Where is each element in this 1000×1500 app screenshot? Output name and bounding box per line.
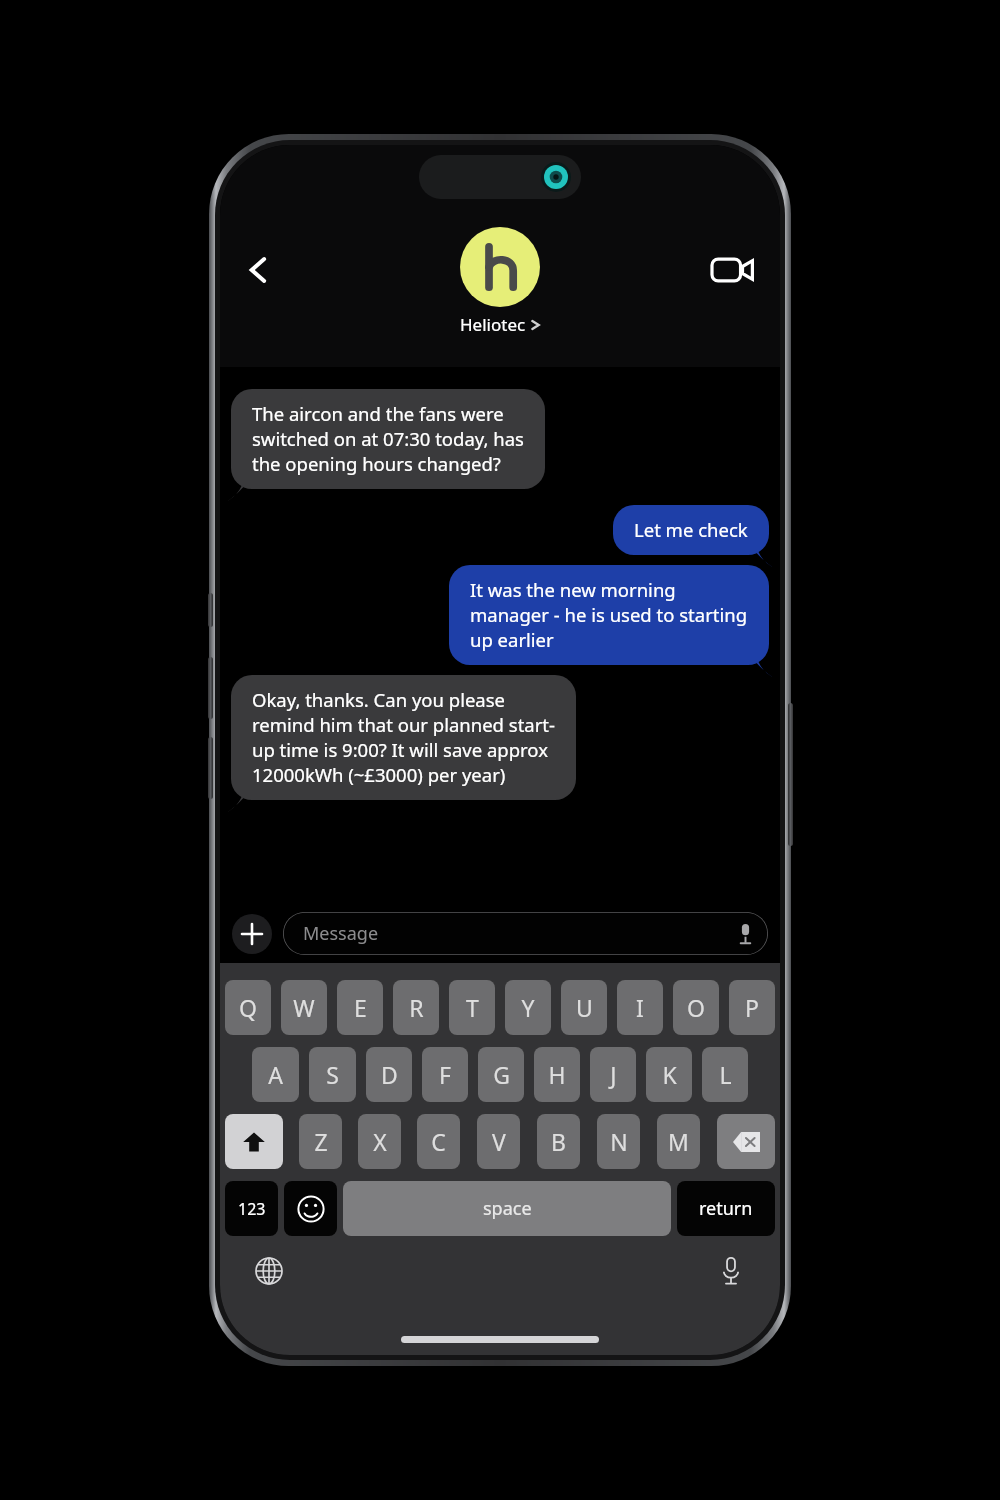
staticText: Message [303, 921, 379, 946]
button[interactable]: L [702, 1047, 748, 1102]
staticText: E [354, 992, 367, 1023]
button[interactable]: F [422, 1047, 468, 1102]
button[interactable]: P [729, 980, 775, 1035]
button[interactable]: The aircon and the fans were [231, 389, 545, 489]
button[interactable]: Q [225, 980, 271, 1035]
staticText: K [662, 1059, 677, 1090]
staticText: L [719, 1059, 732, 1090]
button[interactable]: C [417, 1114, 460, 1169]
button[interactable]: H [534, 1047, 580, 1102]
button[interactable]: A [252, 1047, 299, 1102]
button[interactable]: space [343, 1181, 671, 1236]
staticText: F [439, 1059, 451, 1090]
button[interactable]: 123 [225, 1181, 278, 1236]
button[interactable]: T [449, 980, 495, 1035]
staticText: Okay, thanks. Can you please [252, 687, 506, 712]
staticText: Heliotec [460, 313, 526, 336]
staticText: Q [239, 992, 257, 1023]
staticText: B [551, 1126, 566, 1157]
staticText: O [687, 992, 705, 1023]
staticText: R [409, 992, 424, 1023]
staticText: M [668, 1126, 689, 1157]
button[interactable]: O [673, 980, 719, 1035]
button[interactable]: It was the new morning [449, 565, 769, 665]
staticText: The aircon and the fans were [252, 401, 504, 426]
button[interactable]: Heliotec [460, 227, 540, 336]
button[interactable]: X [358, 1114, 401, 1169]
staticText: W [293, 992, 315, 1023]
staticText: T [466, 992, 479, 1023]
staticText: 12000kWh (~£3000) per year) [252, 762, 506, 787]
button[interactable]: Video call [704, 241, 762, 299]
staticText: G [493, 1059, 510, 1090]
button[interactable]: V [477, 1114, 520, 1169]
staticText: A [268, 1059, 283, 1090]
staticText: the opening hours changed? [252, 451, 501, 476]
button[interactable]: M [657, 1114, 700, 1169]
staticText: C [431, 1126, 446, 1157]
staticText: J [610, 1059, 617, 1090]
staticText: It was the new morning [470, 577, 676, 602]
staticText: up time is 9:00? It will save approx [252, 737, 548, 762]
staticText: N [610, 1126, 628, 1157]
staticText: manager - he is used to starting [470, 602, 748, 627]
button[interactable]: E [337, 980, 383, 1035]
staticText: 123 [238, 1198, 266, 1220]
staticText: Y [521, 992, 535, 1023]
other: Dictate [738, 923, 753, 945]
button[interactable]: Voice input [710, 1250, 752, 1292]
button[interactable]: return [677, 1181, 775, 1236]
button[interactable]: Change keyboard [248, 1250, 290, 1292]
button[interactable]: Emoji [284, 1181, 337, 1236]
staticText: U [576, 992, 593, 1023]
button[interactable]: W [281, 980, 327, 1035]
button[interactable]: Z [299, 1114, 342, 1169]
staticText: V [492, 1126, 506, 1157]
button[interactable]: B [537, 1114, 580, 1169]
button[interactable]: I [617, 980, 663, 1035]
staticText: remind him that our planned start- [252, 712, 555, 737]
button[interactable]: Y [505, 980, 551, 1035]
staticText: switched on at 07:30 today, has [252, 426, 524, 451]
button[interactable]: S [309, 1047, 356, 1102]
button[interactable]: R [393, 980, 439, 1035]
button[interactable]: G [478, 1047, 524, 1102]
staticText: S [326, 1059, 339, 1090]
staticText: Let me check [634, 517, 748, 542]
button[interactable]: K [646, 1047, 692, 1102]
staticText: H [548, 1059, 566, 1090]
staticText: P [745, 992, 759, 1023]
button[interactable]: J [590, 1047, 636, 1102]
staticText: return [699, 1196, 753, 1221]
staticText: D [381, 1059, 398, 1090]
button[interactable]: Message [283, 912, 768, 955]
button[interactable]: Okay, thanks. Can you please [231, 675, 576, 800]
staticText: X [373, 1126, 387, 1157]
staticText: up earlier [470, 627, 554, 652]
staticText: I [636, 992, 644, 1023]
button[interactable]: Back [230, 241, 288, 299]
button[interactable]: Shift [225, 1114, 283, 1169]
button[interactable]: Let me check [613, 505, 769, 555]
staticText: Z [314, 1126, 328, 1157]
button[interactable]: Add attachment [232, 914, 272, 954]
button[interactable]: Backspace [717, 1114, 775, 1169]
button[interactable]: U [561, 980, 607, 1035]
button[interactable]: N [597, 1114, 640, 1169]
staticText: space [483, 1196, 532, 1221]
button[interactable]: D [366, 1047, 412, 1102]
